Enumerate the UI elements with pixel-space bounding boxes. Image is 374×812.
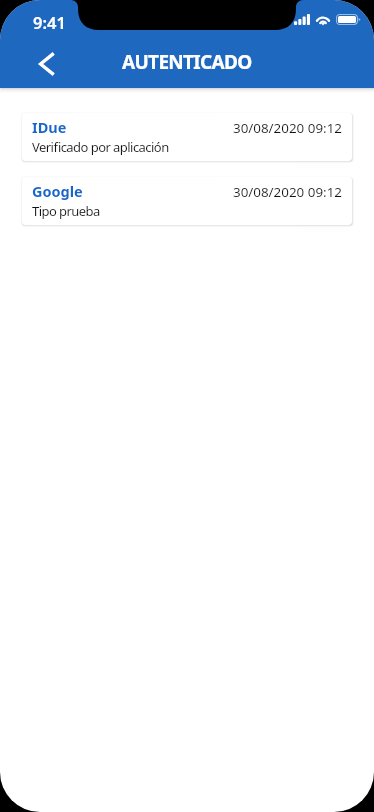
staticText: 30/08/2020 09:12 <box>233 119 342 137</box>
button[interactable]: IDue Verificado por aplicación 30/08/202… <box>22 113 352 161</box>
staticText: 9:41 <box>33 11 66 33</box>
staticText: Verificado por aplicación <box>32 138 169 156</box>
staticText: IDue <box>32 117 67 137</box>
staticText: Google <box>32 181 83 201</box>
staticText: 30/08/2020 09:12 <box>233 183 342 201</box>
staticText: Tipo prueba <box>32 202 100 220</box>
button[interactable]: Google Tipo prueba 30/08/2020 09:12 <box>22 177 352 225</box>
staticText: AUTENTICADO <box>122 49 252 75</box>
button[interactable]: Back <box>29 46 65 82</box>
